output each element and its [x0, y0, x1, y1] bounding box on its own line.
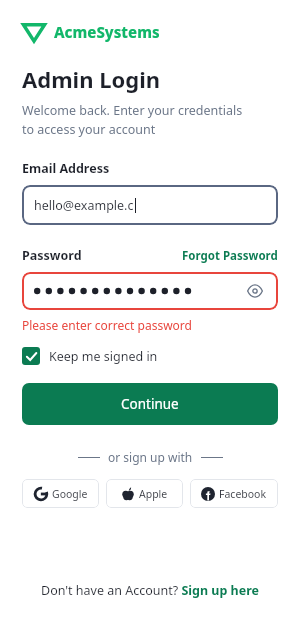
staticText: hello@example.c: [34, 197, 134, 214]
button[interactable]: Show password: [22, 272, 278, 310]
staticText: Email Address: [22, 160, 110, 177]
staticText: Welcome back. Enter your credentials: [22, 102, 243, 119]
staticText: Apple: [139, 487, 168, 501]
button[interactable]: Facebook: [190, 479, 278, 508]
staticText: or sign up with: [108, 449, 193, 465]
button[interactable]: Show password: [244, 280, 266, 302]
button[interactable]: hello@example.c: [22, 185, 278, 225]
button[interactable]: Don't have an Account? Sign up here: [22, 582, 278, 599]
staticText: Admin Login: [22, 64, 161, 94]
button[interactable]: Google: [22, 479, 99, 508]
staticText: Password: [22, 247, 82, 264]
staticText: Facebook: [219, 487, 267, 501]
staticText: Keep me signed in: [49, 348, 158, 365]
button[interactable]: Keep me signed in: [22, 347, 158, 365]
staticText: AcmeSystems: [54, 22, 160, 42]
staticText: Please enter correct password: [22, 317, 192, 333]
staticText: Google: [52, 487, 88, 501]
staticText: Don't have an Account? Sign up here: [41, 582, 259, 599]
staticText: Forgot Password: [182, 248, 278, 264]
button[interactable]: Forgot Password: [182, 248, 278, 264]
staticText: to access your account: [22, 121, 156, 138]
staticText: Continue: [121, 395, 179, 413]
button[interactable]: Continue: [22, 383, 278, 425]
button[interactable]: Apple: [106, 479, 183, 508]
